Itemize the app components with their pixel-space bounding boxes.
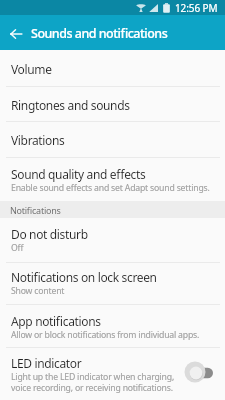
button[interactable]: App notifications	[0, 305, 225, 348]
button[interactable]: Vibrations	[0, 122, 225, 158]
staticText: Do not disturb	[11, 226, 88, 242]
button[interactable]: Notifications on lock screen	[0, 263, 225, 305]
button[interactable]: LED indicator toggle	[184, 360, 214, 384]
button[interactable]: Back	[0, 17, 32, 49]
staticText: Notifications	[10, 204, 61, 216]
staticText: Ringtones and sounds	[11, 97, 130, 113]
button[interactable]: Ringtones and sounds	[0, 87, 225, 122]
staticText: LED indicator	[11, 355, 82, 371]
staticText: Allow or block notifications from indivi…	[11, 329, 200, 341]
staticText: Vibrations	[11, 132, 65, 148]
staticText: App notifications	[11, 313, 101, 329]
button[interactable]: LED indicator	[0, 348, 225, 400]
staticText: Show content	[11, 285, 65, 297]
staticText: Notifications on lock screen	[11, 269, 157, 285]
button[interactable]: Do not disturb	[0, 218, 225, 263]
staticText: Sound quality and effects	[11, 166, 146, 182]
staticText: 12:56 PM	[175, 1, 218, 15]
staticText: Off	[11, 242, 24, 254]
button[interactable]: Volume	[0, 50, 225, 87]
button[interactable]: Sound quality and effects	[0, 158, 225, 201]
staticText: Volume	[11, 61, 52, 77]
staticText: Light up the LED indicator when charging…	[11, 371, 175, 394]
staticText: Enable sound effects and set Adapt sound…	[11, 182, 210, 194]
staticText: Sounds and notifications	[31, 25, 168, 42]
